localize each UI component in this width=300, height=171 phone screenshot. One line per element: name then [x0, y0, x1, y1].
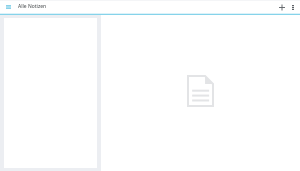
button[interactable]: Open navigation menu	[2, 1, 14, 13]
staticText: Alle Notizen	[18, 3, 47, 10]
button[interactable]: More options	[287, 2, 298, 13]
button[interactable]: Notes list	[0, 15, 101, 171]
button[interactable]: New note	[276, 2, 287, 13]
